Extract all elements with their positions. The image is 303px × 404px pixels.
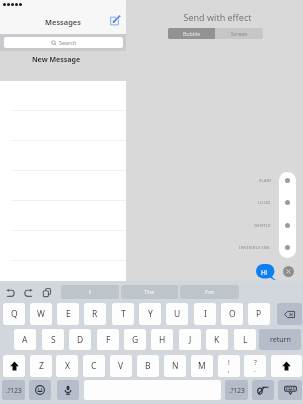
button[interactable]: G — [124, 329, 146, 350]
button[interactable]: O — [221, 303, 243, 325]
staticText: M — [198, 360, 206, 372]
button[interactable]: Effect option — [285, 200, 290, 205]
staticText: GENTLE — [254, 223, 271, 229]
staticText: New Message — [0, 55, 112, 65]
button[interactable]: Hi — [256, 264, 277, 281]
staticText: X — [65, 360, 70, 372]
staticText: Screen — [231, 30, 248, 37]
button[interactable]: INVISIBLE INK — [200, 244, 271, 252]
button[interactable]: Emoji — [29, 380, 51, 400]
button[interactable]: X — [56, 355, 78, 377]
staticText: Q — [11, 308, 18, 320]
button[interactable]: W — [30, 303, 52, 325]
button[interactable]: ! — [218, 355, 240, 377]
staticText: W — [37, 308, 45, 320]
staticText: C — [91, 360, 97, 372]
staticText: K — [214, 334, 220, 346]
staticText: Y — [148, 308, 153, 320]
button[interactable]: Shift — [271, 355, 302, 377]
button[interactable]: B — [137, 355, 159, 377]
button[interactable]: Bubble — [168, 28, 215, 39]
staticText: Messages — [0, 17, 126, 27]
staticText: O — [229, 308, 236, 320]
button[interactable]: T — [112, 303, 134, 325]
button[interactable]: K — [206, 329, 228, 350]
button[interactable]: Effect option — [285, 178, 290, 183]
staticText: J — [189, 334, 192, 346]
staticText: H — [159, 334, 166, 346]
staticText: D — [77, 334, 84, 346]
button[interactable]: I — [61, 285, 119, 299]
button[interactable]: The — [121, 285, 178, 299]
button[interactable]: Paste — [42, 288, 51, 297]
button[interactable]: New message — [109, 15, 122, 28]
button[interactable]: S — [42, 329, 64, 350]
staticText: V — [118, 360, 124, 372]
button[interactable]: L — [234, 329, 256, 350]
staticText: ? — [254, 358, 257, 367]
button[interactable]: F — [97, 329, 119, 350]
button[interactable]: .?123 — [225, 380, 248, 400]
staticText: P — [256, 308, 262, 320]
button[interactable]: Screen — [215, 28, 263, 39]
staticText: U — [174, 308, 181, 320]
button[interactable]: P — [248, 303, 270, 325]
button[interactable]: Handwriting — [252, 380, 274, 400]
button[interactable]: Redo — [24, 288, 33, 297]
button[interactable]: M — [191, 355, 213, 377]
button[interactable]: LOUD — [200, 199, 271, 207]
button[interactable]: Z — [30, 355, 52, 377]
button[interactable]: Effect option — [285, 223, 290, 228]
staticText: E — [66, 308, 71, 320]
staticText: . — [254, 365, 256, 374]
button[interactable]: Close — [283, 266, 294, 277]
button[interactable]: R — [84, 303, 106, 325]
button[interactable]: return — [259, 329, 301, 350]
staticText: B — [145, 360, 151, 372]
staticText: Send with effect — [129, 11, 303, 23]
button[interactable]: V — [110, 355, 132, 377]
button[interactable]: J — [179, 329, 201, 350]
button[interactable]: E — [57, 303, 79, 325]
button[interactable]: Hide keyboard — [278, 380, 302, 400]
button[interactable]: Voice input — [57, 380, 79, 400]
staticText: Bubble — [183, 30, 201, 37]
staticText: return — [270, 335, 291, 345]
button[interactable]: Shift — [3, 355, 25, 377]
staticText: G — [132, 334, 139, 346]
button[interactable]: I'm — [180, 285, 239, 299]
button[interactable]: C — [83, 355, 105, 377]
staticText: A — [22, 334, 28, 346]
button[interactable]: U — [166, 303, 188, 325]
button[interactable]: N — [164, 355, 186, 377]
button[interactable]: GENTLE — [200, 222, 271, 230]
staticText: LOUD — [258, 200, 271, 206]
button[interactable] — [0, 261, 126, 291]
staticText: Search — [59, 39, 77, 46]
staticText: , — [228, 365, 230, 374]
button[interactable]: D — [69, 329, 91, 350]
staticText: T — [121, 308, 126, 320]
button[interactable]: H — [151, 329, 173, 350]
staticText: Hi — [261, 268, 268, 277]
button[interactable]: Effect option — [285, 245, 290, 250]
button[interactable]: .?123 — [2, 380, 25, 400]
staticText: I'm — [205, 288, 214, 296]
button[interactable]: ? — [244, 355, 266, 377]
staticText: S — [51, 334, 56, 346]
button[interactable]: Undo — [6, 288, 15, 297]
button[interactable]: SLAM — [200, 177, 271, 185]
button[interactable]: Y — [139, 303, 161, 325]
button[interactable]: Search — [4, 37, 123, 48]
button[interactable]: I — [194, 303, 216, 325]
button[interactable]: A — [14, 329, 36, 350]
button[interactable]: Backspace — [277, 303, 302, 325]
button[interactable]: Q — [3, 303, 25, 325]
